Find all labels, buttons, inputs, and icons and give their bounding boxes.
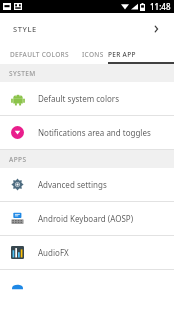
staticText: SYSTEM bbox=[9, 69, 36, 78]
button[interactable]: PER APP MODIFICATIONS bbox=[108, 45, 174, 64]
other: Open style bbox=[151, 24, 161, 34]
staticText: AudioFX bbox=[38, 247, 69, 258]
button[interactable]: Advanced settings bbox=[0, 168, 174, 201]
button[interactable]: Notifications area and toggles bbox=[0, 116, 174, 149]
staticText: PER APP MODIFICATIONS bbox=[108, 50, 174, 59]
button[interactable]: Default system colors bbox=[0, 82, 174, 115]
staticText: Default system colors bbox=[38, 93, 119, 104]
staticText: DEFAULT COLORS bbox=[10, 50, 69, 59]
button[interactable]: AudioFX bbox=[0, 236, 174, 269]
staticText: Android Keyboard (AOSP) bbox=[38, 213, 134, 224]
staticText: 11:48 bbox=[150, 1, 171, 12]
staticText: ICONS bbox=[82, 50, 104, 59]
button[interactable]: STYLE bbox=[0, 13, 174, 45]
staticText: Notifications area and toggles bbox=[38, 127, 151, 138]
button[interactable]: ICONS bbox=[78, 45, 108, 64]
button[interactable] bbox=[0, 270, 174, 303]
button[interactable]: DEFAULT COLORS bbox=[0, 45, 78, 64]
staticText: APPS bbox=[9, 155, 27, 164]
staticText: Advanced settings bbox=[38, 179, 107, 190]
button[interactable]: Android Keyboard (AOSP) bbox=[0, 202, 174, 235]
staticText: STYLE bbox=[13, 24, 37, 34]
